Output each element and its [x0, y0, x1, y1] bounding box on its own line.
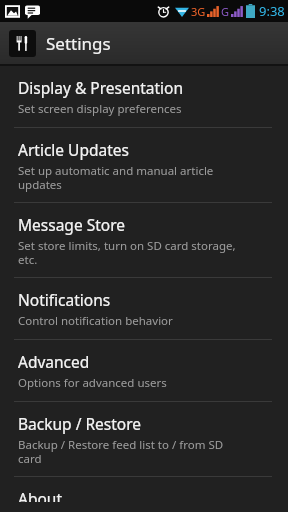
staticText: Options for advanced users: [18, 375, 239, 391]
staticText: Article Updates: [18, 139, 129, 160]
button[interactable]: Backup / Restore: [0, 402, 288, 477]
staticText: Backup / Restore: [18, 413, 142, 434]
button[interactable]: App icon: [0, 22, 288, 64]
staticText: About: [18, 488, 62, 502]
staticText: Backup / Restore feed list to / from SD …: [18, 437, 239, 466]
staticText: Set screen display preferences: [18, 101, 239, 117]
staticText: G: [221, 4, 230, 19]
staticText: Advanced: [18, 351, 90, 372]
staticText: Display & Presentation: [18, 77, 184, 98]
staticText: 9:38: [259, 2, 285, 20]
button[interactable]: Advanced: [0, 340, 288, 402]
staticText: Message Store: [18, 214, 125, 235]
other: App icon: [9, 30, 36, 57]
staticText: Set up automatic and manual article upda…: [18, 163, 239, 192]
staticText: Settings: [46, 32, 111, 55]
button[interactable]: Message Store: [0, 203, 288, 278]
button[interactable]: Display & Presentation: [0, 66, 288, 128]
staticText: 3G: [191, 4, 206, 19]
staticText: Control notification behavior: [18, 313, 239, 329]
button[interactable]: About: [0, 477, 288, 512]
button[interactable]: Notifications: [0, 278, 288, 340]
staticText: Notifications: [18, 289, 111, 310]
button[interactable]: Article Updates: [0, 128, 288, 203]
staticText: Set store limits, turn on SD card storag…: [18, 238, 239, 267]
